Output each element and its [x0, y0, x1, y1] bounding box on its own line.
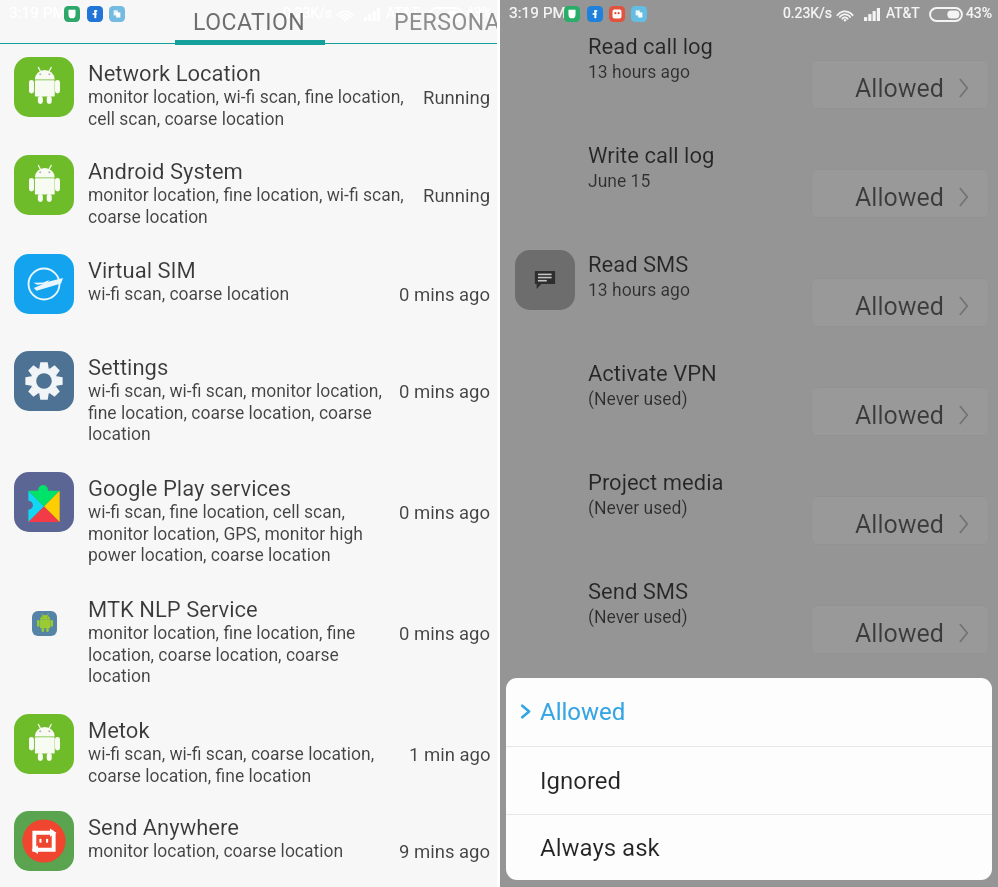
staticText: Allowed: [855, 619, 944, 648]
button[interactable]: Metok: [0, 703, 497, 800]
staticText: 3:19 PM: [9, 4, 67, 22]
staticText: (Never used): [588, 607, 688, 628]
staticText: wi-fi scan, wi-fi scan, monitor location…: [88, 381, 382, 402]
staticText: Read SMS: [588, 252, 689, 278]
button[interactable]: Allowed: [811, 605, 989, 654]
staticText: Activate VPN: [588, 361, 717, 387]
staticText: 0 mins ago: [399, 623, 491, 645]
button[interactable]: MTK NLP Service: [0, 582, 497, 703]
button[interactable]: Allowed: [811, 387, 989, 436]
button[interactable]: Google Play services: [0, 461, 497, 582]
staticText: coarse location, fine location: [88, 766, 312, 787]
staticText: Allowed: [855, 401, 944, 430]
staticText: Project media: [588, 470, 724, 496]
button[interactable]: Allowed: [506, 678, 992, 746]
staticText: monitor location, coarse location: [88, 841, 344, 862]
button[interactable]: Allowed: [811, 496, 989, 545]
staticText: wi-fi scan, coarse location: [88, 284, 290, 305]
staticText: power location, coarse location: [88, 545, 331, 566]
staticText: coarse location: [88, 207, 208, 228]
button[interactable]: Network Location: [0, 46, 497, 143]
staticText: Write call log: [588, 143, 715, 169]
staticText: monitor location, fine location, fine: [88, 623, 356, 644]
staticText: monitor location, GPS, monitor high: [88, 524, 363, 545]
button[interactable]: Send Anywhere: [0, 800, 497, 887]
button[interactable]: Allowed: [811, 278, 989, 327]
staticText: 0.23K/s: [283, 5, 333, 21]
staticText: Allowed: [855, 292, 944, 321]
staticText: Send Anywhere: [88, 815, 239, 841]
staticText: 0 mins ago: [399, 502, 491, 524]
button[interactable]: LOCATION: [174, 0, 325, 45]
staticText: wi-fi scan, fine location, cell scan,: [88, 502, 345, 523]
staticText: June 15: [588, 171, 651, 192]
button[interactable]: Allowed: [811, 169, 989, 218]
button[interactable]: Settings: [0, 340, 497, 461]
staticText: Running: [423, 87, 491, 109]
button[interactable]: Virtual SIM: [0, 243, 497, 340]
staticText: Read call log: [588, 34, 713, 60]
staticText: Always ask: [540, 834, 660, 862]
staticText: (Never used): [588, 498, 688, 519]
staticText: 0.23K/s: [783, 5, 833, 21]
staticText: Google Play services: [88, 476, 292, 502]
staticText: 1 min ago: [409, 744, 491, 766]
button[interactable]: Allowed: [811, 60, 989, 109]
staticText: 43%: [466, 5, 492, 21]
button[interactable]: Always ask: [506, 815, 992, 880]
button[interactable]: Android System: [0, 144, 497, 241]
staticText: Send SMS: [588, 579, 689, 605]
staticText: cell scan, coarse location: [88, 109, 285, 130]
staticText: monitor location, fine location, wi-fi s…: [88, 185, 404, 206]
button[interactable]: PERSONAL: [325, 0, 497, 45]
staticText: 0 mins ago: [399, 284, 491, 306]
staticText: 13 hours ago: [588, 280, 690, 301]
staticText: location: [88, 424, 151, 445]
button[interactable]: [0, 0, 174, 45]
staticText: LOCATION: [193, 9, 306, 36]
staticText: Metok: [88, 718, 150, 744]
staticText: PERSONAL: [394, 9, 497, 36]
staticText: Settings: [88, 355, 169, 381]
staticText: Android System: [88, 159, 243, 185]
staticText: 9 mins ago: [399, 841, 491, 863]
staticText: Network Location: [88, 61, 261, 87]
staticText: Allowed: [855, 74, 944, 103]
staticText: location, coarse location, coarse: [88, 645, 339, 666]
staticText: Virtual SIM: [88, 258, 196, 284]
staticText: Allowed: [855, 510, 944, 539]
staticText: Allowed: [855, 183, 944, 212]
staticText: wi-fi scan, wi-fi scan, coarse location,: [88, 744, 375, 765]
staticText: AT&T: [386, 5, 420, 21]
staticText: fine location, coarse location, coarse: [88, 403, 372, 424]
staticText: AT&T: [886, 5, 920, 21]
staticText: 0 mins ago: [399, 381, 491, 403]
staticText: 3:19 PM: [509, 4, 567, 22]
staticText: monitor location, wi-fi scan, fine locat…: [88, 87, 404, 108]
staticText: 43%: [966, 5, 992, 21]
staticText: (Never used): [588, 389, 688, 410]
staticText: Ignored: [540, 767, 622, 795]
staticText: MTK NLP Service: [88, 597, 258, 623]
staticText: location: [88, 666, 151, 687]
staticText: 13 hours ago: [588, 62, 690, 83]
staticText: Allowed: [540, 698, 626, 726]
button[interactable]: Ignored: [506, 747, 992, 814]
staticText: Running: [423, 185, 491, 207]
